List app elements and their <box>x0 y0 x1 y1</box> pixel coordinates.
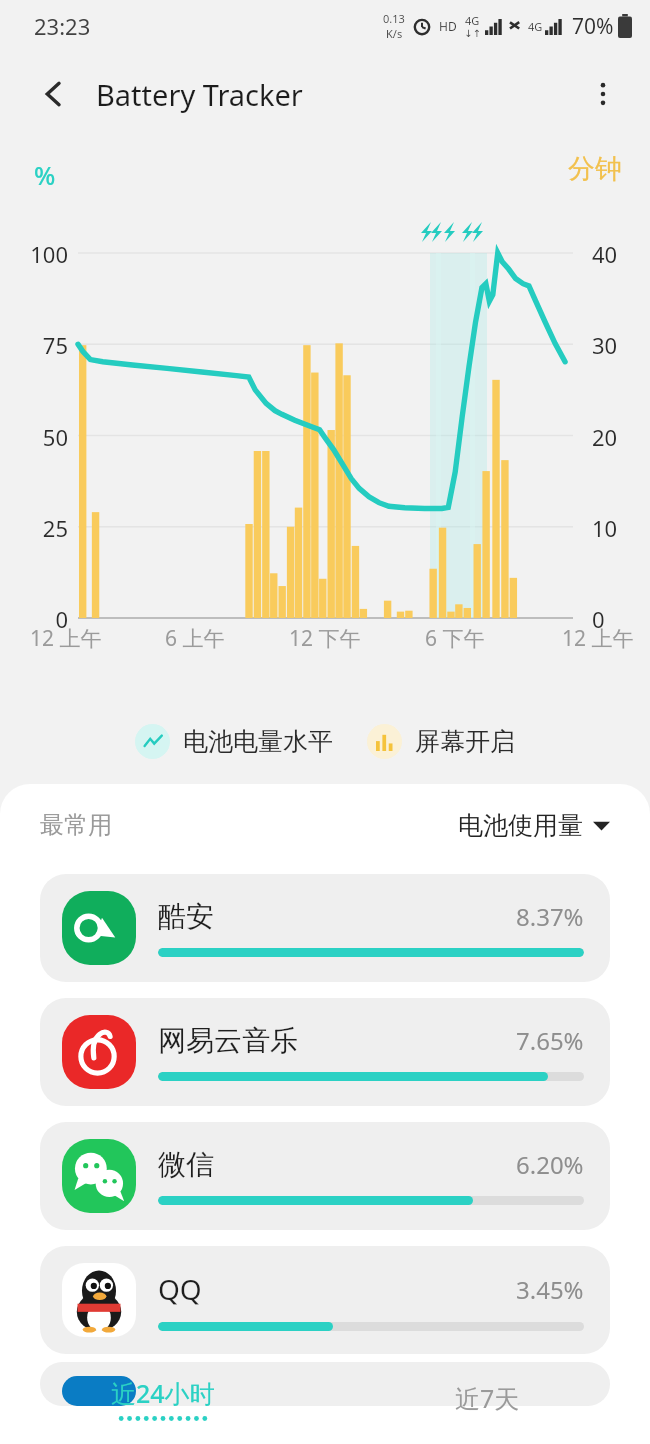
staticText: 0 <box>0 604 68 634</box>
staticText: 0 <box>592 604 650 634</box>
staticText: 25 <box>0 513 68 543</box>
staticText: 50 <box>0 422 68 452</box>
staticText: 0.13 <box>383 11 405 26</box>
staticText: 6.20% <box>516 1148 584 1181</box>
staticText: 微信 <box>158 1147 214 1182</box>
button[interactable]: 电池使用量 <box>458 810 610 841</box>
staticText: 40 <box>592 239 650 269</box>
staticText: 8.37% <box>516 900 584 933</box>
staticText: 电池电量水平 <box>183 726 333 757</box>
staticText: 12 上午 <box>562 624 634 653</box>
button[interactable]: 近7天 <box>325 1352 650 1444</box>
staticText: 10 <box>592 513 650 543</box>
staticText: 7.65% <box>516 1024 584 1057</box>
button[interactable]: 网易云音乐 <box>40 998 610 1106</box>
button[interactable] <box>40 1362 610 1406</box>
staticText: 6 上午 <box>165 624 225 653</box>
button[interactable]: Back <box>28 68 80 120</box>
staticText: QQ <box>158 1270 202 1308</box>
staticText: 12 下午 <box>289 624 361 653</box>
staticText: 屏幕开启 <box>415 726 515 757</box>
staticText: 3.45% <box>516 1273 584 1306</box>
staticText: 75 <box>0 330 68 360</box>
button[interactable]: 微信 <box>40 1122 610 1230</box>
staticText: K/s <box>386 26 403 41</box>
staticText: 电池使用量 <box>458 810 583 841</box>
staticText: 20 <box>592 422 650 452</box>
button[interactable]: 屏幕开启 <box>363 724 519 759</box>
staticText: 网易云音乐 <box>158 1023 298 1058</box>
staticText: % <box>34 158 56 192</box>
button[interactable]: 电池电量水平 <box>131 724 337 759</box>
staticText: 近7天 <box>455 1381 520 1415</box>
staticText: HD <box>439 18 457 34</box>
staticText: 30 <box>592 330 650 360</box>
staticText: 近24小时 <box>111 1376 215 1410</box>
staticText: 6 下午 <box>425 624 485 653</box>
staticText: 最常用 <box>40 810 112 840</box>
staticText: 23:23 <box>34 11 91 41</box>
button[interactable]: More options <box>578 69 628 119</box>
staticText: 100 <box>0 239 68 269</box>
staticText: 4G <box>465 13 480 28</box>
button[interactable]: 酷安 <box>40 874 610 982</box>
staticText: 酷安 <box>158 899 214 934</box>
button[interactable]: QQ <box>40 1246 610 1354</box>
staticText: 70% <box>572 12 614 41</box>
staticText: Battery Tracker <box>96 75 303 114</box>
staticText: ↓↑ <box>464 28 481 40</box>
staticText: 4G <box>528 19 543 34</box>
button[interactable]: 近24小时 <box>0 1352 325 1444</box>
staticText: 12 上午 <box>30 624 102 653</box>
staticText: 分钟 <box>568 152 622 186</box>
